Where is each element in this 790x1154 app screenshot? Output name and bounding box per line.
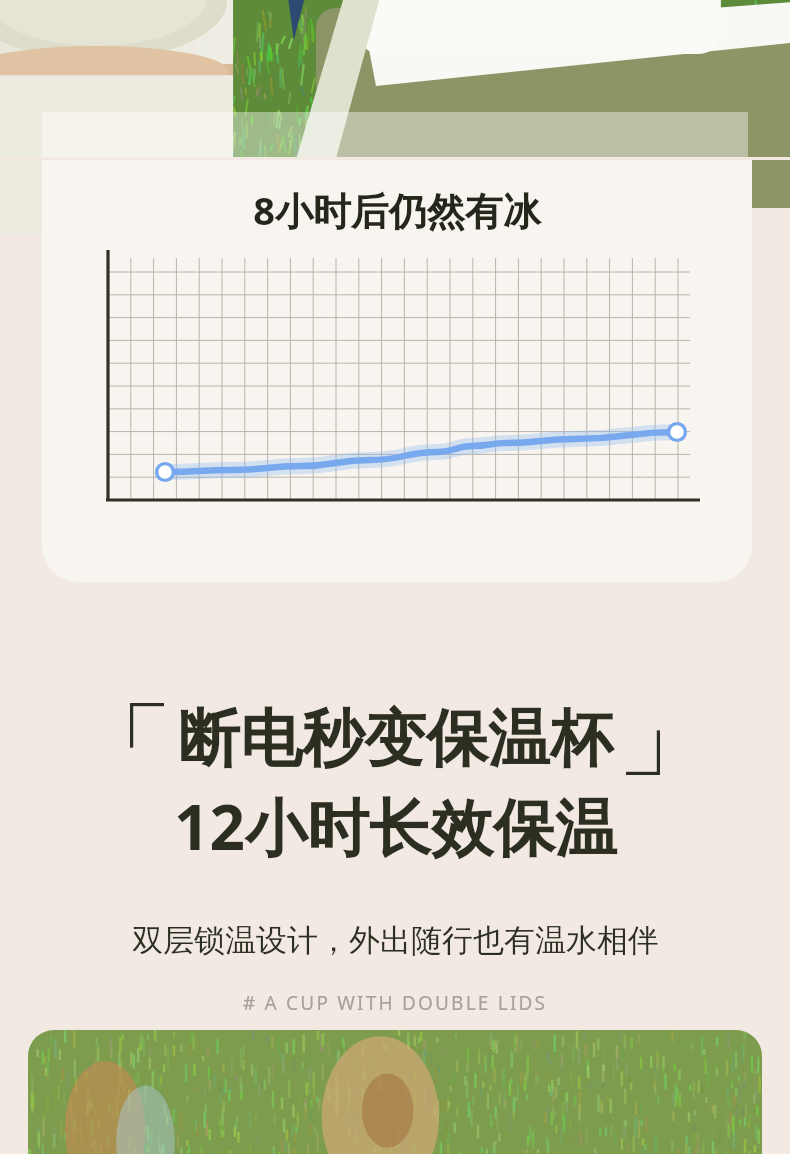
button[interactable] <box>28 1030 762 1154</box>
other: Opening quote <box>130 703 164 775</box>
button[interactable]: 8小时后仍然有冰 <box>42 160 752 582</box>
button[interactable]: 12小时长效保温 <box>174 784 617 869</box>
staticText: 8小时后仍然有冰 <box>42 184 752 236</box>
staticText: 断电秒变保温杯 <box>178 700 612 778</box>
button[interactable]: # A CUP WITH DOUBLE LIDS <box>243 990 548 1016</box>
other: Closing quote <box>626 703 660 775</box>
button[interactable]: 双层锁温设计，外出随行也有温水相伴 <box>132 921 659 960</box>
button[interactable]: Opening quote <box>130 700 660 778</box>
